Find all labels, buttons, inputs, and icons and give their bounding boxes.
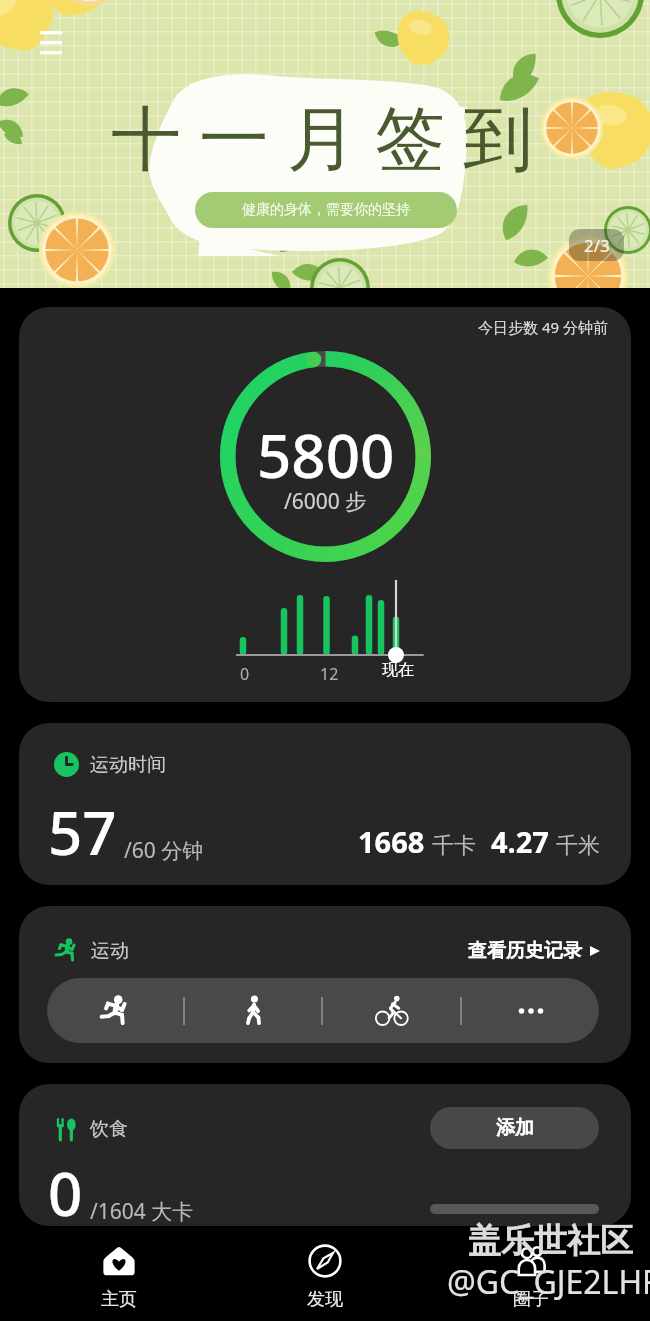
staticText: /1604 大卡 [90,1197,194,1226]
staticText: 运动时间 [90,753,166,777]
button[interactable]: 发现 [222,1226,428,1321]
staticText: 圈子 [513,1288,549,1311]
staticText: 今日步数 49 分钟前 [478,317,608,337]
button[interactable]: 运动时间 [19,723,631,885]
staticText: 千米 [556,832,600,860]
button[interactable]: 2/3 [569,229,624,261]
button[interactable]: 添加 [430,1107,599,1149]
staticText: 1668 [358,822,425,861]
staticText: 现在 [382,660,414,680]
button[interactable]: 运动 [19,906,631,1063]
staticText: 2/3 [584,234,610,257]
button[interactable]: 查看历史记录 [468,939,600,963]
staticText: 千卡 [432,832,476,860]
staticText: 饮食 [90,1117,128,1141]
button[interactable]: More [462,978,599,1043]
staticText: 健康的身体，需要你的坚持 [242,201,410,219]
button[interactable]: Running [47,978,183,1043]
button[interactable]: Walking [185,978,321,1043]
staticText: 添加 [496,1116,534,1140]
staticText: 12 [320,663,339,685]
staticText: 主页 [101,1288,137,1311]
staticText: /6000 步 [284,487,367,516]
staticText: 发现 [307,1288,343,1311]
button[interactable]: 饮食 [19,1084,631,1226]
button[interactable]: 主页 [16,1226,222,1321]
staticText: 57 [48,791,117,873]
button[interactable]: 圈子 [428,1226,634,1321]
button[interactable]: Menu [36,27,66,57]
staticText: 查看历史记录 [468,939,582,963]
staticText: @GC_GJE2LHF [447,1260,650,1304]
button[interactable]: Cycling [323,978,460,1043]
button[interactable]: 健康的身体，需要你的坚持 [195,192,457,228]
button[interactable]: 今日步数 49 分钟前 [19,307,631,702]
staticText: 运动 [91,939,129,963]
staticText: 4.27 [491,822,549,861]
staticText: 盖乐世社区 [468,1220,633,1262]
staticText: /60 分钟 [124,836,204,865]
staticText: 5800 [257,414,395,496]
staticText: 0 [48,1152,83,1226]
staticText: 0 [240,663,250,685]
staticText: 十一月签到 [102,96,542,184]
